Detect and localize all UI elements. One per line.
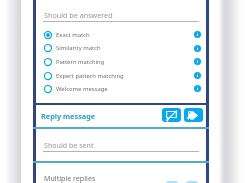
button[interactable]: Expert pattern matching [42,69,188,82]
button[interactable]: Info [194,31,201,38]
button[interactable]: Info [194,72,201,79]
staticText: Welcome message [56,85,108,93]
button[interactable]: Pattern matching [42,55,188,68]
button[interactable]: Similarity match [42,41,188,54]
button[interactable]: Info [194,85,201,92]
staticText: Expert pattern matching [56,72,124,80]
button[interactable]: Exact match [42,28,188,41]
staticText: Pattern matching [56,58,105,66]
staticText: Should be sent [44,140,94,150]
button[interactable]: Reply message [41,111,96,121]
button[interactable]: Add label [184,108,203,122]
staticText: Similarity match [56,44,101,52]
staticText: Exact match [56,31,90,39]
button[interactable]: Info [194,45,201,52]
button[interactable]: Action [166,181,178,183]
button[interactable]: Welcome message [42,82,188,95]
button[interactable]: Disable comments [162,108,181,122]
staticText: Should be answered [44,10,113,20]
button[interactable]: Multiple replies [44,173,96,183]
button[interactable]: Info [194,58,201,65]
button[interactable]: Second action [186,181,198,183]
